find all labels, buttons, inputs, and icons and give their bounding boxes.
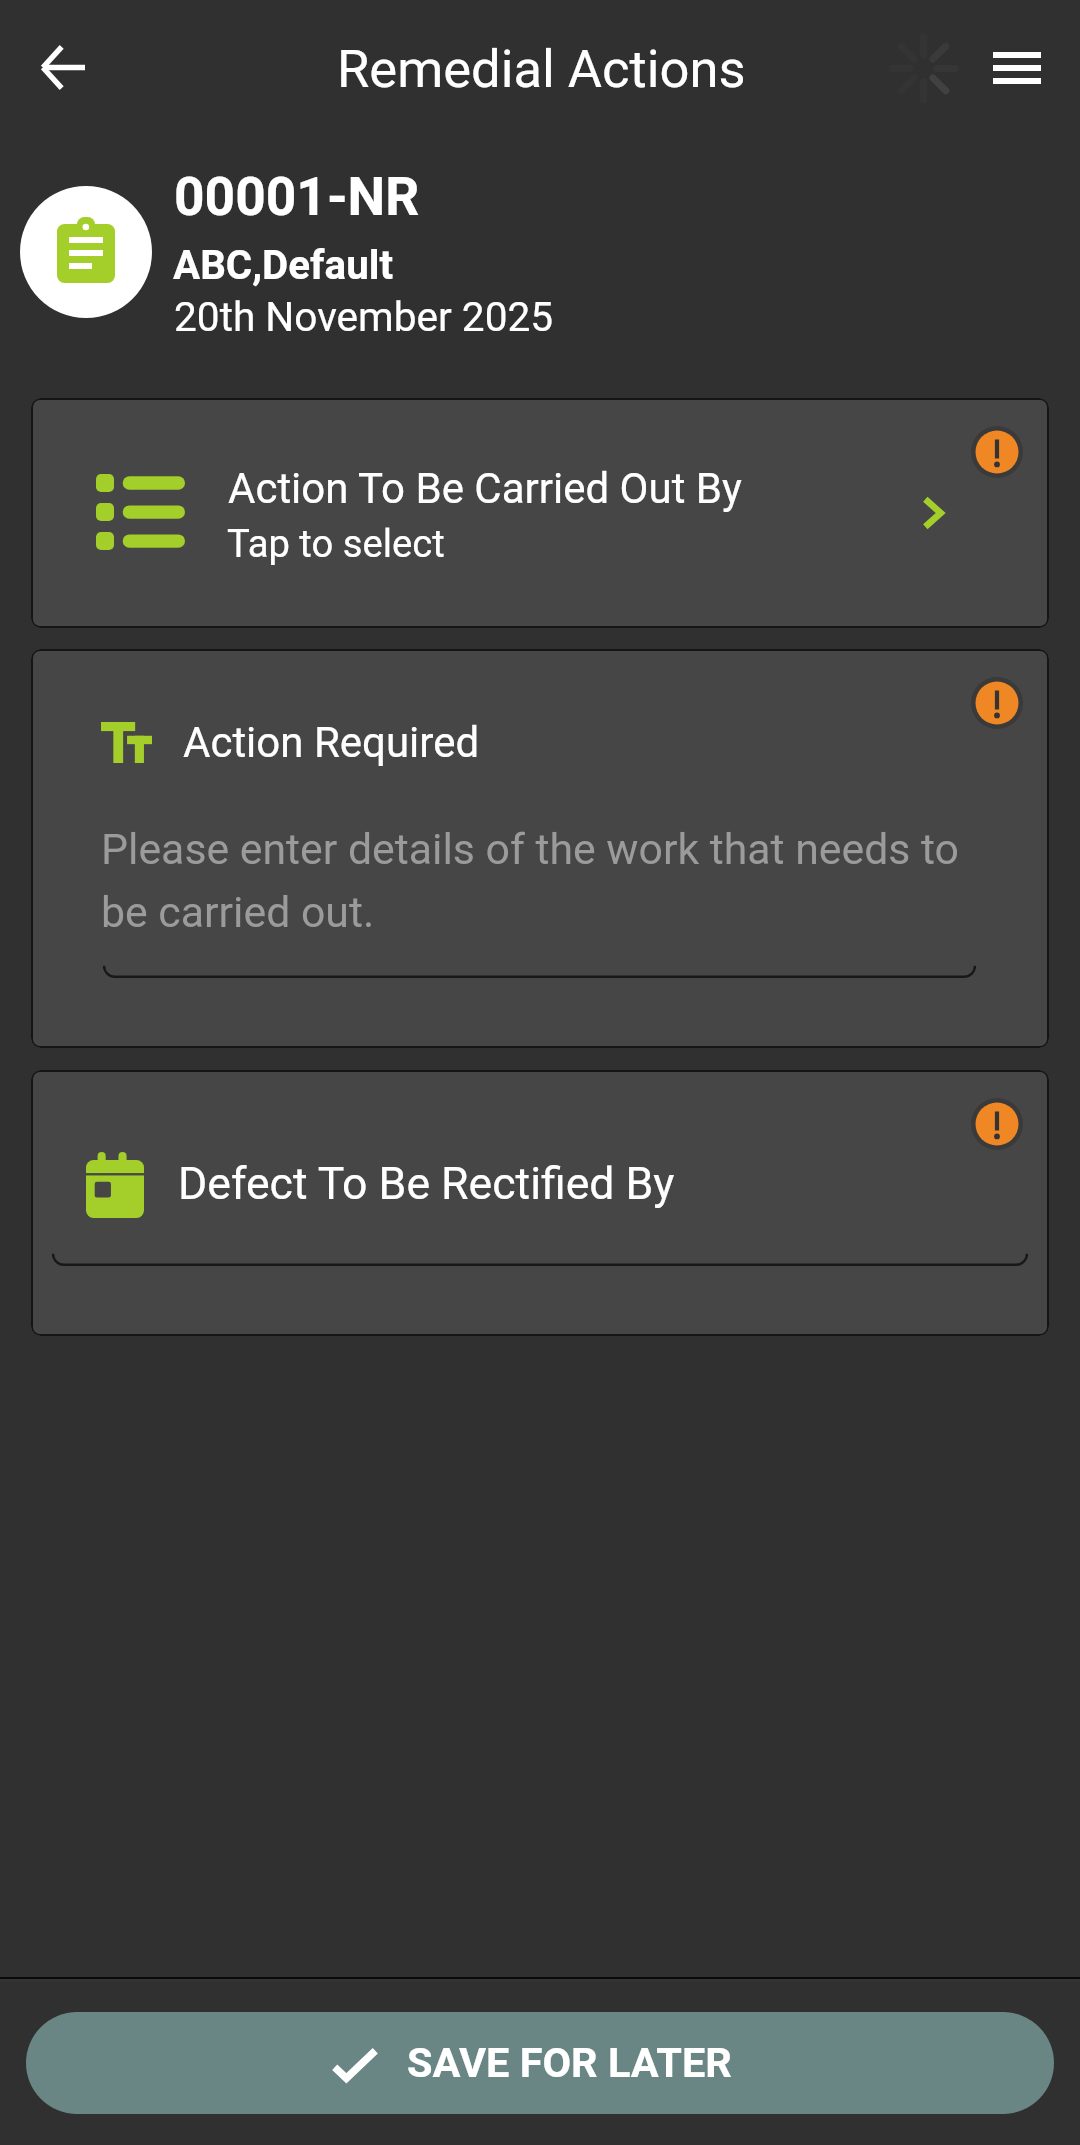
button[interactable]: Back [19,23,107,111]
button[interactable]: Menu [973,24,1061,112]
button[interactable]: Defect To Be Rectified By [31,1070,1049,1336]
staticText: Remedial Actions [337,38,746,100]
button[interactable]: SAVE FOR LATER [26,2012,1054,2114]
staticText: Please enter details of the work that ne… [101,824,981,937]
staticText: Defect To Be Rectified By [178,1158,675,1210]
staticText: 20th November 2025 [174,293,554,341]
staticText: SAVE FOR LATER [407,2038,732,2087]
staticText: Action Required [183,718,480,767]
staticText: Action To Be Carried Out By [228,464,742,513]
staticText: ABC,Default [173,242,393,289]
button[interactable]: Action Required [31,649,1049,1048]
button[interactable]: Action To Be Carried Out By [31,398,1049,628]
staticText: Tap to select [227,522,445,567]
staticText: 00001-NR [174,166,420,228]
